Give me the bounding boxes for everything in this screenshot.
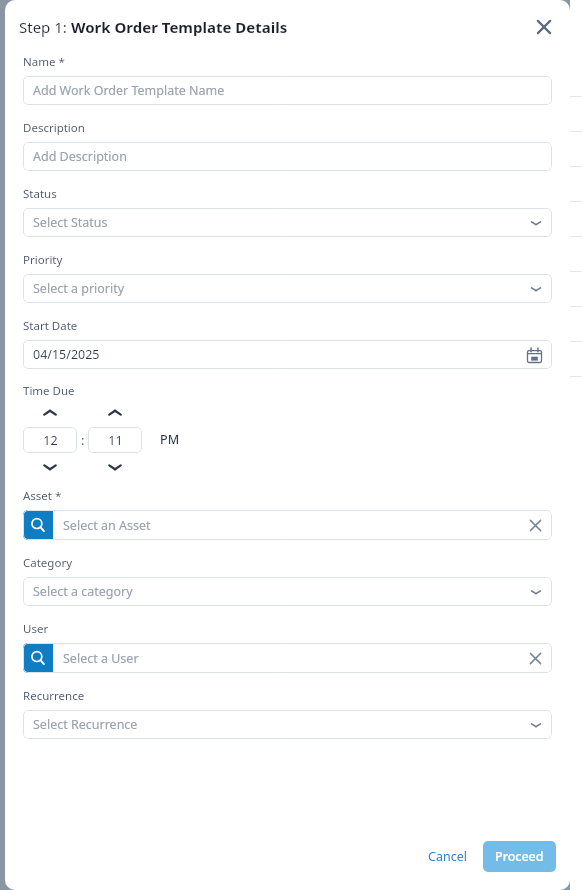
button[interactable]: Clear Asset bbox=[526, 516, 544, 534]
button[interactable]: Pick date bbox=[525, 346, 543, 364]
button[interactable]: Select a priority bbox=[23, 274, 552, 303]
button[interactable]: Increase minute bbox=[88, 402, 142, 424]
staticText: Select Status bbox=[33, 214, 529, 231]
button[interactable]: Select Recurrence bbox=[23, 710, 552, 739]
staticText: Work Order Template Details bbox=[71, 17, 288, 37]
button[interactable]: Decrease hour bbox=[23, 456, 77, 478]
staticText: Time Due bbox=[23, 383, 75, 399]
button[interactable]: 11 bbox=[88, 427, 142, 453]
staticText: 11 bbox=[108, 432, 123, 449]
button[interactable]: Search Asset bbox=[23, 510, 53, 540]
staticText: 12 bbox=[43, 432, 58, 449]
staticText: Select a priority bbox=[33, 280, 529, 297]
button[interactable]: Increase hour bbox=[23, 402, 77, 424]
button[interactable]: Close bbox=[530, 13, 558, 41]
button[interactable]: Add Work Order Template Name bbox=[23, 76, 552, 105]
staticText: User bbox=[23, 621, 49, 637]
staticText: Select a User bbox=[63, 650, 526, 667]
button[interactable]: Decrease minute bbox=[88, 456, 142, 478]
staticText: PM bbox=[160, 431, 180, 448]
staticText: Priority bbox=[23, 252, 63, 268]
button[interactable]: Cancel bbox=[418, 842, 477, 871]
staticText: Step 1: bbox=[19, 17, 71, 37]
staticText: Name * bbox=[23, 54, 65, 70]
button[interactable]: Select Status bbox=[23, 208, 552, 237]
staticText: Add Work Order Template Name bbox=[33, 82, 543, 99]
button[interactable]: Clear User bbox=[526, 649, 544, 667]
staticText: Description bbox=[23, 120, 85, 136]
staticText: Category bbox=[23, 555, 73, 571]
staticText: : bbox=[81, 431, 85, 449]
button[interactable]: 04/15/2025 bbox=[23, 340, 552, 369]
staticText: Proceed bbox=[495, 848, 544, 865]
button[interactable]: Search User bbox=[23, 643, 53, 673]
staticText: Select a category bbox=[33, 583, 529, 600]
staticText: Select Recurrence bbox=[33, 716, 529, 733]
staticText: Cancel bbox=[428, 848, 467, 865]
button[interactable]: Select a category bbox=[23, 577, 552, 606]
staticText: Start Date bbox=[23, 318, 78, 334]
staticText: Add Description bbox=[33, 148, 543, 165]
staticText: Select an Asset bbox=[63, 517, 526, 534]
staticText: Status bbox=[23, 186, 57, 202]
button[interactable]: 12 bbox=[23, 427, 77, 453]
staticText: Recurrence bbox=[23, 688, 85, 704]
button[interactable]: Proceed bbox=[483, 841, 556, 872]
button[interactable]: Add Description bbox=[23, 142, 552, 171]
staticText: Asset * bbox=[23, 488, 62, 504]
staticText: 04/15/2025 bbox=[33, 346, 525, 363]
